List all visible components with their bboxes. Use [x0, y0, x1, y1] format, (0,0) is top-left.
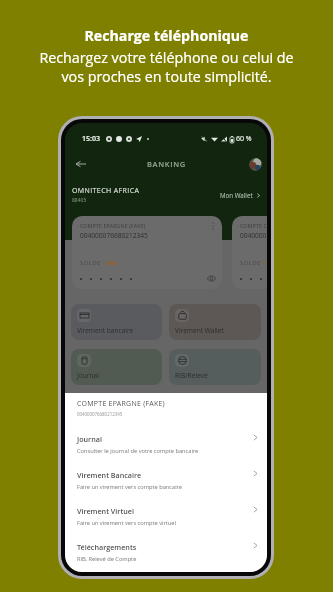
staticText: 004000076680212345 [77, 411, 123, 417]
button[interactable]: Profile [249, 158, 262, 171]
staticText: COMPTE EPARGNE (FAKE) [80, 222, 146, 229]
staticText: Virement Virtuel [77, 506, 134, 516]
button[interactable]: Virement Wallet [169, 304, 261, 340]
staticText: 15:03 [82, 134, 100, 144]
staticText: RIB, Relevé de Compte [77, 555, 137, 563]
staticText: OMNITECH AFRICA [72, 186, 140, 196]
staticText: Mon Wallet [220, 191, 253, 199]
staticText: Virement Wallet [175, 326, 224, 335]
staticText: Rechargez votre téléphone ou celui de vo… [6, 48, 327, 86]
staticText: Consulter le journal de votre compte ban… [77, 447, 199, 455]
staticText: Journal [77, 434, 102, 444]
staticText: COMPTE COURANT (FAKE) [240, 222, 267, 229]
staticText: 88405 [72, 197, 87, 204]
staticText: RIB/Relevé [175, 371, 208, 380]
staticText: Virement bancaire [77, 326, 134, 335]
staticText: Recharge téléphonique [84, 26, 249, 45]
staticText: 004000076680212345 [80, 231, 148, 240]
staticText: Téléchargements [77, 542, 137, 552]
staticText: 60 % [236, 134, 252, 144]
button[interactable]: Journal [77, 434, 259, 470]
staticText: Journal [77, 371, 99, 380]
button[interactable]: RIB/Relevé [169, 349, 261, 385]
staticText: Faire un virement vers compte virtuel [77, 519, 176, 527]
button[interactable]: Téléchargements [77, 542, 259, 572]
button[interactable]: Journal [71, 349, 162, 385]
button[interactable]: Virement bancaire [71, 304, 162, 340]
staticText: BANKING [147, 159, 186, 169]
button[interactable]: Virement Virtuel [77, 506, 259, 542]
button[interactable]: Virement Bancaire [77, 470, 259, 506]
button[interactable]: COMPTE EPARGNE (FAKE) [72, 216, 222, 289]
staticText: COMPTE EPARGNE (FAKE) [77, 399, 165, 409]
button[interactable]: Back [71, 154, 91, 174]
staticText: SOLDE [80, 259, 101, 267]
other: Show balance [207, 274, 216, 283]
staticText: GNF [265, 259, 267, 267]
staticText: 004000076680212345 [240, 231, 267, 240]
staticText: GNF [105, 259, 118, 267]
staticText: Virement Bancaire [77, 470, 142, 480]
button[interactable]: Mon Wallet [220, 188, 261, 202]
button[interactable]: COMPTE COURANT (FAKE) [232, 216, 267, 289]
staticText: SOLDE [240, 259, 261, 267]
staticText: Faire un virement vers compte bancaire [77, 483, 183, 491]
